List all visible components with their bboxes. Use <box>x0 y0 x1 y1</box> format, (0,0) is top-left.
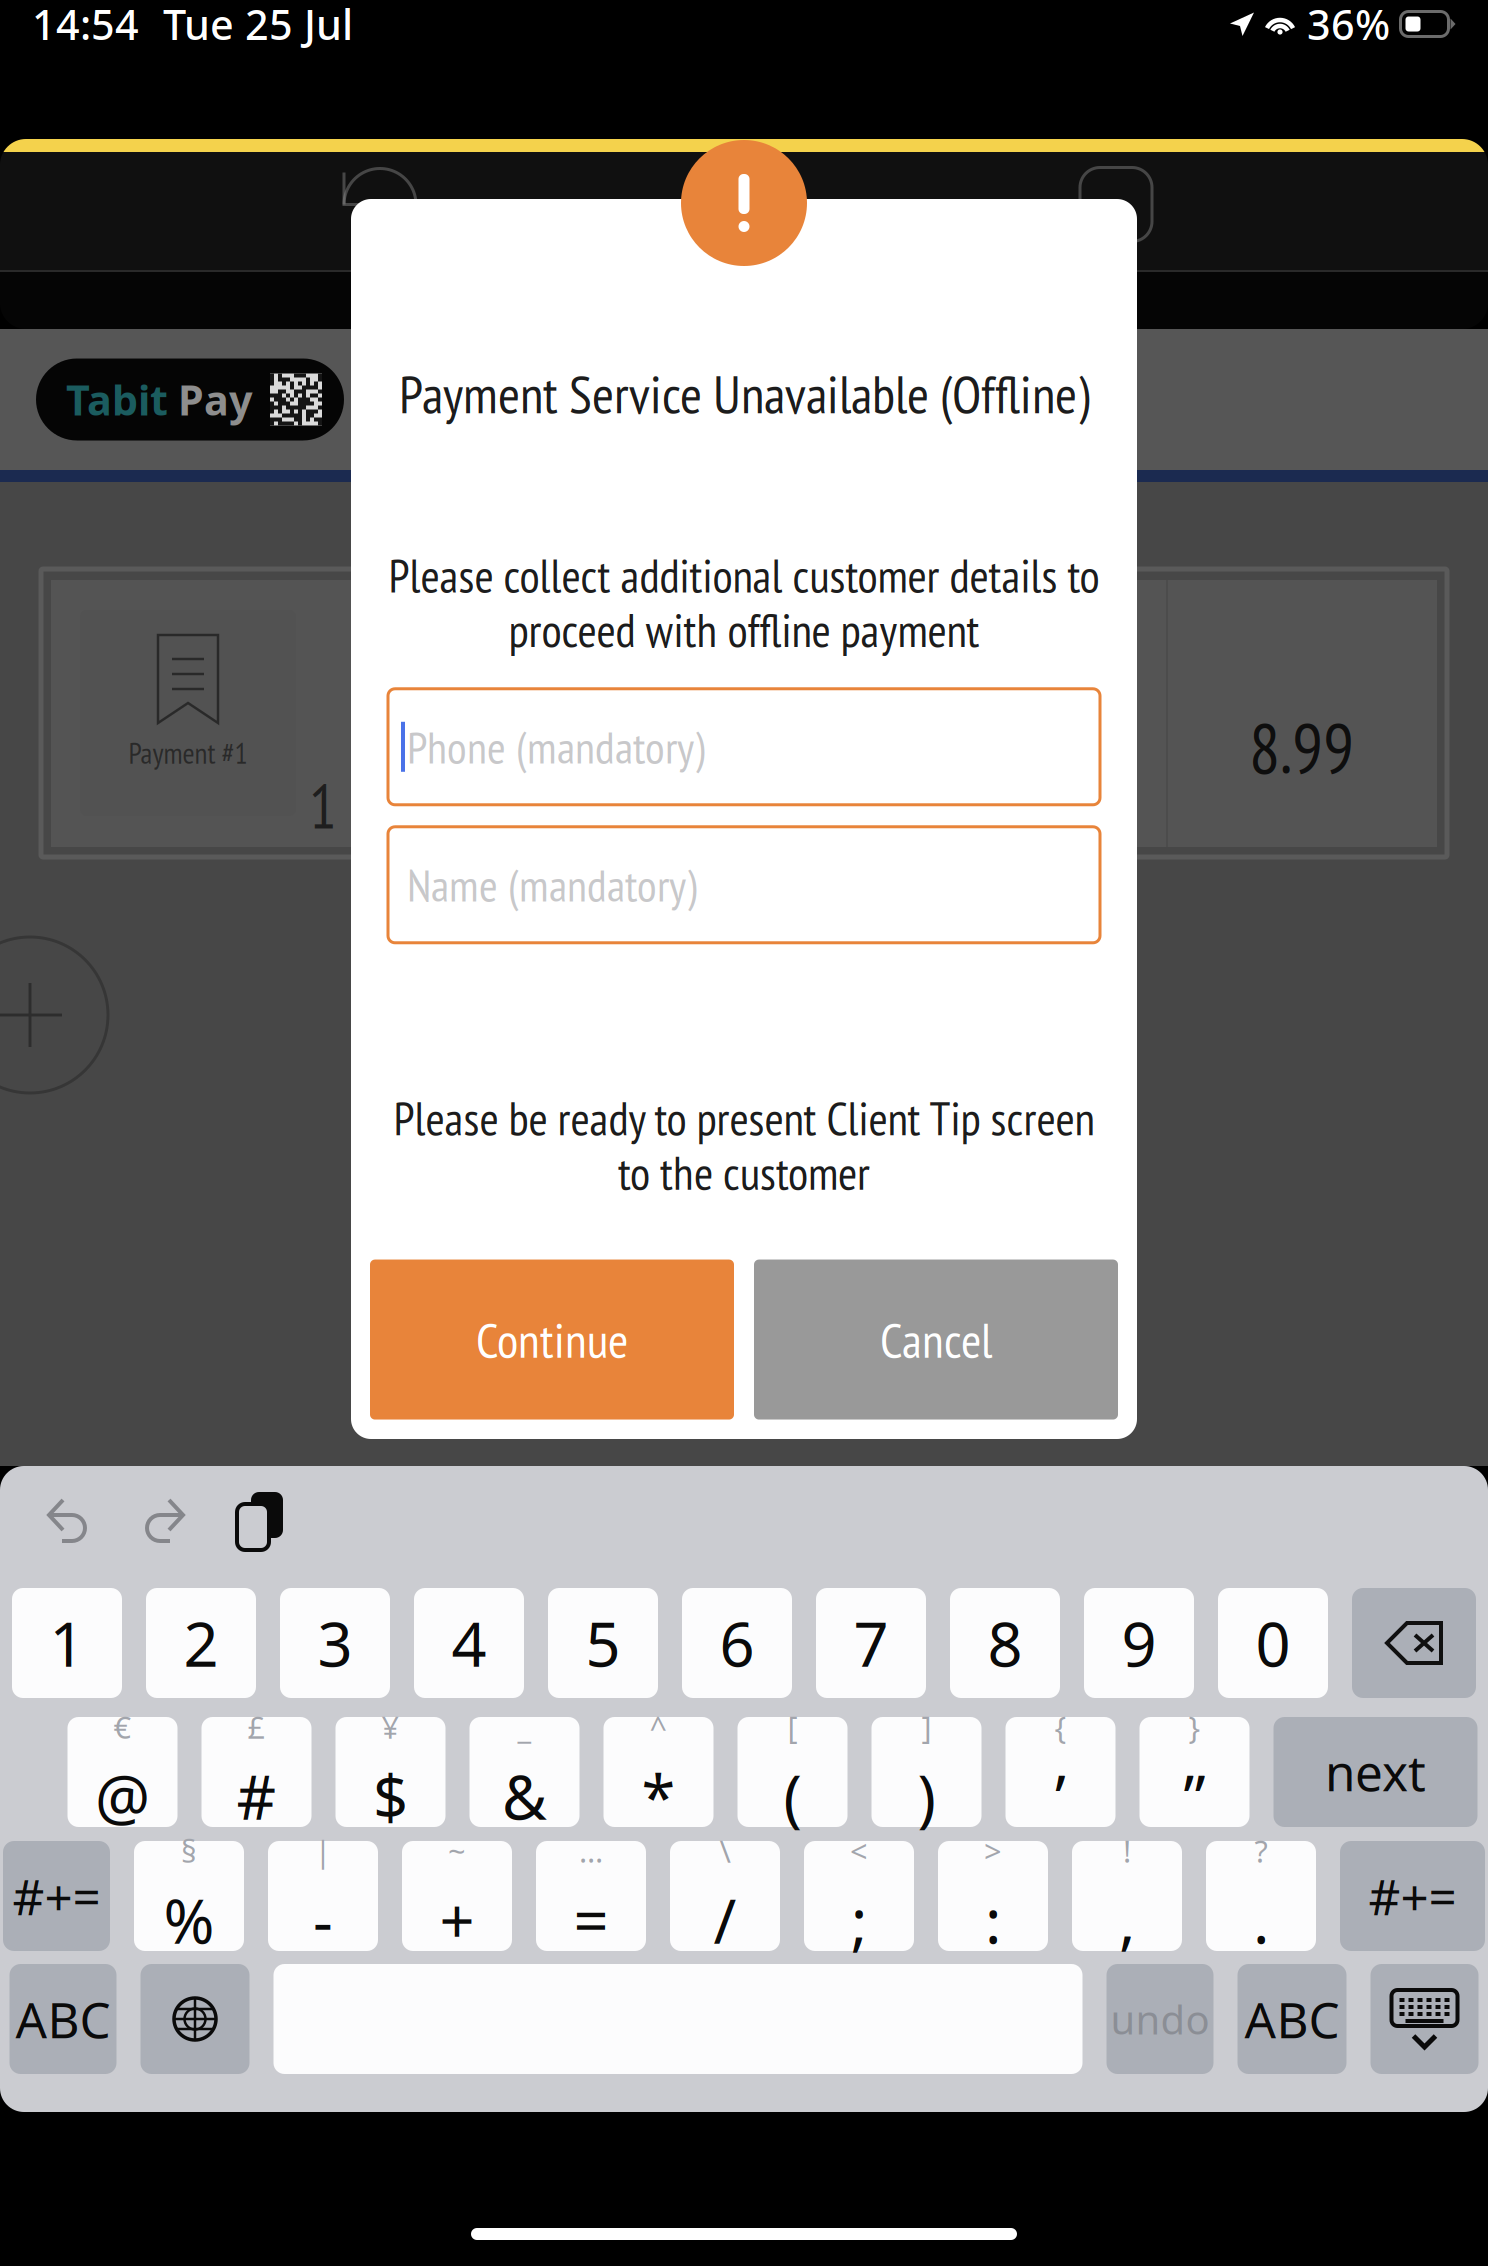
staticText: @ <box>95 1755 150 1836</box>
button[interactable]: … <box>536 1841 646 1951</box>
button[interactable]: ? <box>1206 1841 1316 1951</box>
staticText: 8 <box>987 1602 1022 1684</box>
staticText: ? <box>1254 1830 1267 1871</box>
button[interactable]: ^ <box>603 1717 713 1827</box>
button[interactable]: Continue <box>370 1260 734 1420</box>
button[interactable]: { <box>1005 1717 1115 1827</box>
staticText: Tue 25 Jul <box>163 0 353 51</box>
button[interactable]: ] <box>871 1717 981 1827</box>
staticText: #+= <box>1368 1863 1456 1929</box>
staticText: > <box>984 1830 1002 1871</box>
staticText: ^ <box>649 1706 667 1747</box>
staticText: Cancel <box>880 1308 992 1371</box>
staticText: : <box>985 1879 1001 1960</box>
staticText: ! <box>1123 1830 1131 1871</box>
staticText: ” <box>1183 1755 1205 1836</box>
staticText: 5 <box>585 1602 620 1684</box>
button[interactable]: 8 <box>950 1588 1060 1698</box>
staticText: _ <box>517 1706 531 1747</box>
staticText: Please be ready to present Client Tip sc… <box>393 1088 1094 1148</box>
button[interactable]: Redo <box>138 1466 190 1588</box>
staticText: 4 <box>451 1602 486 1684</box>
staticText: § <box>181 1830 197 1871</box>
button[interactable]: 1 <box>12 1588 122 1698</box>
button[interactable]: 4 <box>414 1588 524 1698</box>
staticText: ) <box>917 1755 935 1836</box>
staticText: 9 <box>1121 1602 1156 1684</box>
staticText: Continue <box>476 1308 628 1371</box>
button[interactable]: € <box>67 1717 177 1827</box>
staticText: # <box>236 1755 276 1836</box>
button[interactable]: _ <box>469 1717 579 1827</box>
staticText: * <box>641 1755 675 1836</box>
staticText: ~ <box>448 1830 466 1871</box>
staticText: - <box>313 1879 333 1960</box>
staticText: ¥ <box>381 1706 399 1747</box>
button[interactable]: | <box>268 1841 378 1951</box>
button[interactable]: Phone (mandatory) <box>388 689 1100 805</box>
staticText: % <box>163 1879 214 1960</box>
button[interactable]: #+= <box>1340 1841 1485 1951</box>
button[interactable]: ! <box>1072 1841 1182 1951</box>
staticText: next <box>1325 1739 1426 1805</box>
staticText: ABC <box>15 1986 110 2052</box>
button[interactable]: Undo <box>42 1466 94 1588</box>
staticText: } <box>1188 1706 1200 1747</box>
staticText: 0 <box>1255 1602 1290 1684</box>
button[interactable]: Delete <box>1352 1588 1476 1698</box>
staticText: = <box>573 1879 608 1960</box>
button[interactable]: > <box>938 1841 1048 1951</box>
button[interactable]: 5 <box>548 1588 658 1698</box>
staticText: 1 <box>49 1602 84 1684</box>
button[interactable]: next <box>1273 1717 1477 1827</box>
button[interactable]: ~ <box>402 1841 512 1951</box>
staticText: + <box>439 1879 474 1960</box>
staticText: Name (mandatory) <box>407 855 697 914</box>
staticText: Payment #1 <box>128 734 247 772</box>
staticText: Payment Service Unavailable (Offline) <box>399 359 1089 428</box>
button[interactable]: Hide keyboard <box>1370 1964 1478 2074</box>
button[interactable]: ABC <box>9 1964 116 2074</box>
button[interactable]: ABC <box>1237 1964 1346 2074</box>
button[interactable]: Next keyboard <box>140 1964 249 2074</box>
staticText: ; <box>851 1879 867 1960</box>
staticText: Tabit <box>66 372 168 427</box>
staticText: #+= <box>12 1863 100 1929</box>
staticText: 2 <box>183 1602 218 1684</box>
button[interactable]: \ <box>670 1841 780 1951</box>
button[interactable]: 9 <box>1084 1588 1194 1698</box>
button[interactable]: 7 <box>816 1588 926 1698</box>
button[interactable]: 2 <box>146 1588 256 1698</box>
button[interactable]: < <box>804 1841 914 1951</box>
staticText: 8.99 <box>1249 702 1354 792</box>
staticText: undo <box>1110 1992 1209 2045</box>
button[interactable]: #+= <box>3 1841 110 1951</box>
staticText: Phone (mandatory) <box>407 717 705 776</box>
staticText: & <box>502 1755 547 1836</box>
staticText: . <box>1253 1879 1269 1960</box>
staticText: , <box>1119 1879 1135 1960</box>
button[interactable]: } <box>1139 1717 1249 1827</box>
button[interactable]: £ <box>201 1717 311 1827</box>
staticText: ( <box>783 1755 801 1836</box>
staticText: { <box>1054 1706 1066 1747</box>
staticText: … <box>579 1830 603 1871</box>
staticText: € <box>113 1706 131 1747</box>
staticText: $ <box>373 1755 408 1836</box>
button[interactable]: ¥ <box>335 1717 445 1827</box>
button[interactable]: [ <box>737 1717 847 1827</box>
button[interactable]: undo <box>1106 1964 1213 2074</box>
button[interactable]: § <box>134 1841 244 1951</box>
button[interactable]: Paste <box>234 1466 286 1588</box>
staticText: 36% <box>1307 0 1390 51</box>
staticText: Pay <box>178 372 253 427</box>
button[interactable]: Cancel <box>754 1260 1118 1420</box>
button[interactable]: 3 <box>280 1588 390 1698</box>
button[interactable]: 0 <box>1218 1588 1328 1698</box>
button[interactable]: 6 <box>682 1588 792 1698</box>
staticText: 1 <box>309 766 337 845</box>
button[interactable]: Name (mandatory) <box>388 827 1100 943</box>
staticText: 14:54 <box>32 0 139 51</box>
staticText: ABC <box>1244 1986 1339 2052</box>
